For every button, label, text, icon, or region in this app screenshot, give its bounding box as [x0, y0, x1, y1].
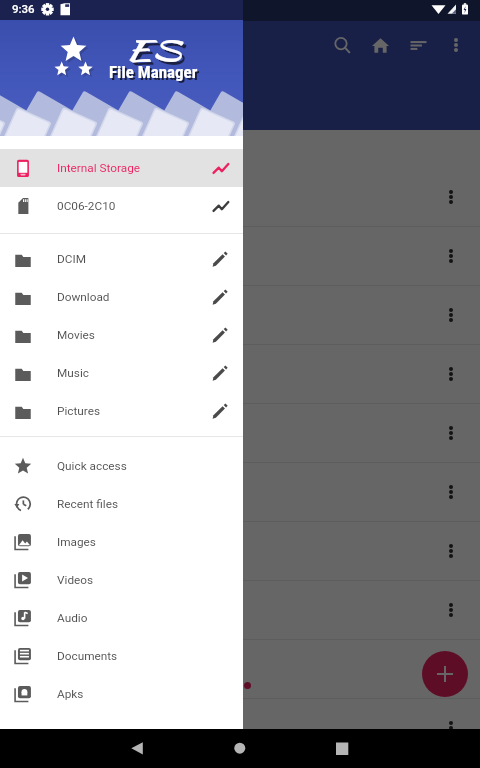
button[interactable]: More options: [432, 414, 470, 452]
staticText: Movies: [57, 328, 95, 342]
staticText: Internal Storage: [57, 161, 141, 175]
staticText: Documents: [57, 649, 118, 663]
button[interactable]: Images: [0, 523, 243, 561]
button[interactable]: More options: [0, 522, 480, 580]
button[interactable]: More options: [0, 699, 480, 757]
staticText: Music: [57, 366, 89, 380]
button[interactable]: Videos: [0, 561, 243, 599]
button[interactable]: More options: [432, 178, 470, 216]
button[interactable]: Search: [323, 26, 361, 64]
button[interactable]: More options: [432, 296, 470, 334]
button[interactable]: Home: [361, 26, 399, 64]
button[interactable]: Apks: [0, 675, 243, 713]
staticText: File Manager: [111, 64, 200, 84]
staticText: File Manager: [109, 62, 198, 82]
button[interactable]: Edit: [205, 244, 235, 274]
button[interactable]: Sort: [399, 26, 437, 64]
button[interactable]: More options: [432, 532, 470, 570]
button[interactable]: More options: [432, 355, 470, 393]
button[interactable]: More options: [0, 227, 480, 285]
button[interactable]: More options: [432, 650, 470, 688]
staticText: Recent files: [57, 497, 119, 511]
button[interactable]: More options: [432, 473, 470, 511]
staticText: 9:36: [12, 2, 35, 15]
staticText: Quick access: [57, 459, 127, 473]
button[interactable]: More options: [432, 709, 470, 747]
button[interactable]: More options: [432, 237, 470, 275]
button[interactable]: Movies: [0, 316, 243, 354]
button[interactable]: Edit: [205, 396, 235, 426]
button[interactable]: Quick access: [0, 447, 243, 485]
staticText: ES: [125, 30, 182, 70]
button[interactable]: More options: [0, 581, 480, 639]
staticText: Videos: [57, 573, 94, 587]
staticText: Pictures: [57, 404, 101, 418]
button[interactable]: Music: [0, 354, 243, 392]
staticText: Apks: [57, 687, 84, 701]
staticText: Audio: [57, 611, 88, 625]
button[interactable]: Edit: [205, 282, 235, 312]
staticText: 0C06-2C10: [57, 199, 116, 213]
staticText: DCIM: [57, 252, 86, 266]
staticText: ES: [128, 33, 185, 73]
button[interactable]: More options: [0, 404, 480, 462]
button[interactable]: Internal Storage: [0, 149, 243, 187]
button[interactable]: Audio: [0, 599, 243, 637]
button[interactable]: More options: [0, 640, 480, 698]
staticText: Download: [57, 290, 110, 304]
staticText: Images: [57, 535, 96, 549]
button[interactable]: Recent files: [0, 485, 243, 523]
button[interactable]: 0C06-2C10: [0, 187, 243, 225]
button[interactable]: Edit: [205, 320, 235, 350]
button[interactable]: DCIM: [0, 240, 243, 278]
button[interactable]: Add: [422, 651, 468, 697]
button[interactable]: Analyze: [205, 191, 235, 221]
button[interactable]: More options: [0, 345, 480, 403]
button[interactable]: More options: [0, 463, 480, 521]
button[interactable]: Download: [0, 278, 243, 316]
button[interactable]: More options: [437, 26, 475, 64]
button[interactable]: More options: [0, 286, 480, 344]
button[interactable]: More options: [0, 168, 480, 226]
button[interactable]: More options: [432, 591, 470, 629]
button[interactable]: Analyze: [205, 153, 235, 183]
button[interactable]: Pictures: [0, 392, 243, 430]
button[interactable]: Edit: [205, 358, 235, 388]
button[interactable]: Documents: [0, 637, 243, 675]
